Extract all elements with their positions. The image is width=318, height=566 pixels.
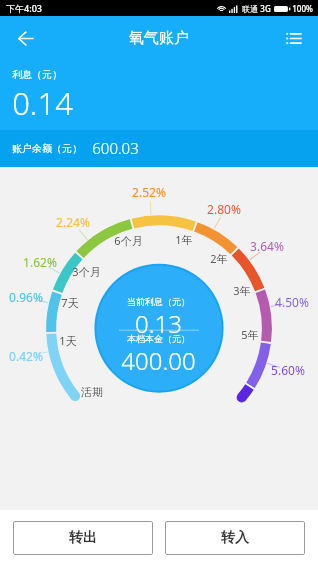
staticText: 当前利息（元）	[127, 296, 190, 307]
staticText: 5.60%	[271, 362, 305, 378]
staticText: 本档本金（元）	[127, 333, 190, 344]
staticText: 转入	[221, 529, 249, 547]
button[interactable]: 转入	[165, 521, 305, 555]
staticText: 100%	[292, 3, 313, 14]
staticText: 6个月	[114, 233, 143, 248]
staticText: 7天	[61, 295, 79, 310]
button[interactable]: 返回	[6, 19, 44, 57]
staticText: 3.64%	[250, 238, 284, 254]
staticText: 1年	[175, 232, 193, 247]
staticText: 3个月	[72, 264, 101, 279]
staticText: 0.96%	[9, 289, 43, 305]
button[interactable]: 转出	[13, 521, 153, 555]
staticText: 2年	[210, 251, 228, 266]
staticText: 3年	[233, 283, 251, 298]
staticText: 0.42%	[9, 348, 43, 364]
staticText: 0.13	[135, 307, 182, 340]
staticText: 下午4:03	[6, 2, 42, 14]
staticText: 2.24%	[56, 214, 90, 230]
staticText: 账户余额（元）	[12, 142, 82, 155]
staticText: 1.62%	[23, 254, 57, 270]
staticText: 0.14	[12, 82, 73, 124]
staticText: 1天	[59, 333, 77, 348]
staticText: 氧气账户	[129, 29, 189, 48]
staticText: 2.52%	[132, 184, 166, 200]
button[interactable]: 菜单	[274, 19, 312, 57]
staticText: 联通 3G	[242, 3, 271, 14]
staticText: 4.50%	[275, 294, 309, 310]
staticText: 600.03	[92, 138, 139, 158]
staticText: 2.80%	[207, 201, 241, 217]
staticText: 利息（元）	[12, 68, 62, 81]
staticText: 活期	[81, 385, 103, 399]
staticText: 400.00	[121, 344, 196, 377]
staticText: 转出	[69, 529, 97, 547]
staticText: 5年	[241, 327, 259, 342]
